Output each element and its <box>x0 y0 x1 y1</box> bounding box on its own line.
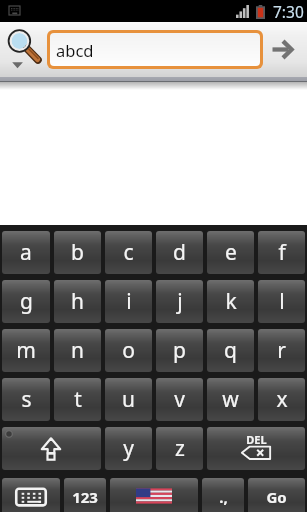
staticText: e <box>225 238 237 267</box>
staticText: c <box>123 238 134 267</box>
button[interactable]: Go <box>248 478 305 512</box>
staticText: k <box>225 287 237 316</box>
staticText: u <box>122 385 135 414</box>
button[interactable]: r <box>258 329 305 372</box>
staticText: t <box>74 385 82 414</box>
button[interactable]: f <box>258 231 305 274</box>
staticText: 123 <box>72 487 98 507</box>
button[interactable]: abcd <box>50 33 260 66</box>
staticText: 7:30 <box>273 1 304 22</box>
staticText: h <box>71 287 84 316</box>
button[interactable]: e <box>207 231 254 274</box>
button[interactable]: n <box>54 329 101 372</box>
button[interactable]: Search engine <box>0 22 47 77</box>
staticText: ., <box>219 487 228 507</box>
button[interactable]: t <box>54 378 101 421</box>
staticText: x <box>276 385 288 414</box>
button[interactable]: p <box>156 329 203 372</box>
staticText: b <box>71 238 84 267</box>
staticText: DEL <box>246 432 267 447</box>
staticText: l <box>279 287 285 316</box>
staticText: a <box>20 238 32 267</box>
button[interactable]: y <box>105 427 152 470</box>
staticText: abcd <box>56 39 94 61</box>
button[interactable]: c <box>105 231 152 274</box>
button[interactable]: Go <box>263 22 307 77</box>
button[interactable]: l <box>258 280 305 323</box>
button[interactable]: u <box>105 378 152 421</box>
staticText: y <box>123 434 134 463</box>
button[interactable]: Switch keyboard <box>2 478 60 512</box>
staticText: s <box>21 385 32 414</box>
staticText: r <box>277 336 286 365</box>
staticText: q <box>224 336 237 365</box>
button[interactable]: w <box>207 378 254 421</box>
staticText: p <box>173 336 186 365</box>
button[interactable]: ., <box>202 478 244 512</box>
button[interactable]: Delete <box>207 427 305 470</box>
button[interactable]: d <box>156 231 203 274</box>
staticText: j <box>177 287 183 316</box>
staticText: i <box>126 287 132 316</box>
button[interactable]: 123 <box>64 478 106 512</box>
staticText: w <box>222 385 239 414</box>
staticText: g <box>20 287 33 316</box>
button[interactable]: Change language <box>110 478 198 512</box>
button[interactable]: z <box>156 427 203 470</box>
staticText: m <box>16 336 36 365</box>
button[interactable]: h <box>54 280 101 323</box>
button[interactable]: q <box>207 329 254 372</box>
staticText: d <box>173 238 186 267</box>
button[interactable]: i <box>105 280 152 323</box>
button[interactable]: k <box>207 280 254 323</box>
button[interactable]: x <box>258 378 305 421</box>
button[interactable]: s <box>2 378 50 421</box>
button[interactable]: a <box>2 231 50 274</box>
staticText: o <box>122 336 135 365</box>
button[interactable]: Shift <box>2 427 101 470</box>
staticText: Go <box>266 487 287 507</box>
button[interactable]: o <box>105 329 152 372</box>
button[interactable]: g <box>2 280 50 323</box>
staticText: f <box>278 238 286 267</box>
button[interactable]: v <box>156 378 203 421</box>
staticText: z <box>175 434 185 463</box>
staticText: v <box>174 385 185 414</box>
button[interactable]: j <box>156 280 203 323</box>
button[interactable]: m <box>2 329 50 372</box>
staticText: n <box>71 336 84 365</box>
button[interactable]: b <box>54 231 101 274</box>
